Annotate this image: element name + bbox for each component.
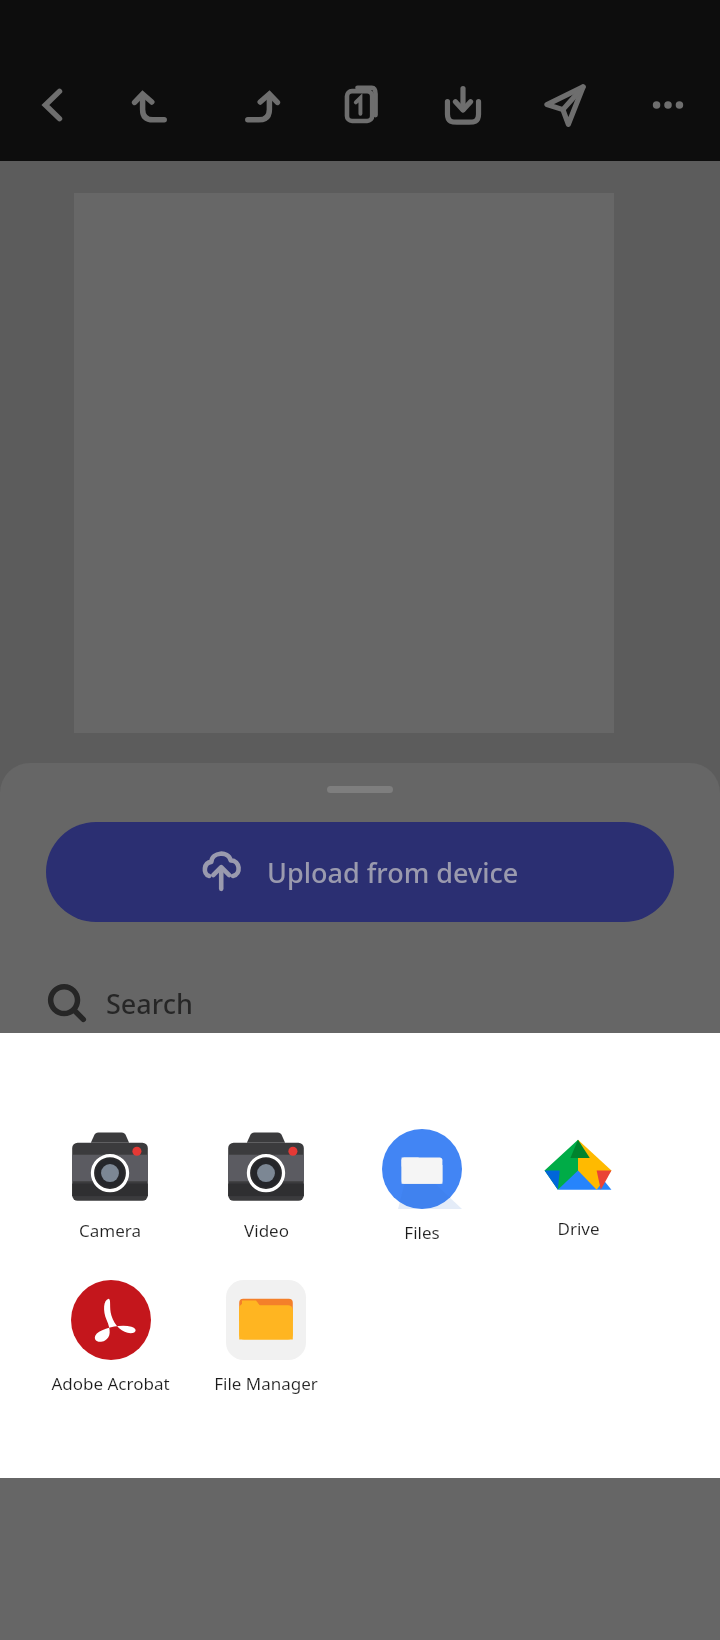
button[interactable]: Upload from device	[46, 822, 674, 922]
button[interactable]: Search	[42, 971, 720, 1035]
staticText: Drive	[557, 1217, 600, 1240]
button[interactable]: File Manager	[188, 1280, 344, 1395]
staticText: Search	[106, 985, 193, 1022]
button[interactable]: Redo	[229, 77, 285, 133]
staticText: Camera	[79, 1219, 141, 1242]
staticText: Upload from device	[267, 854, 519, 891]
button[interactable]: Camera	[32, 1129, 188, 1242]
button[interactable]: Undo	[127, 77, 183, 133]
button[interactable]: Send	[537, 77, 593, 133]
staticText: Files	[404, 1221, 440, 1244]
staticText: Video	[244, 1219, 289, 1242]
button[interactable]: Download	[435, 77, 491, 133]
button[interactable]: Adobe Acrobat	[32, 1280, 188, 1395]
button[interactable]: Drive	[500, 1129, 656, 1240]
button[interactable]: More options	[640, 77, 696, 133]
staticText: Adobe Acrobat	[51, 1372, 170, 1395]
button[interactable]: Pages	[332, 77, 388, 133]
staticText: File Manager	[214, 1372, 318, 1395]
button[interactable]: Video	[188, 1129, 344, 1242]
button[interactable]: Files	[344, 1129, 500, 1244]
button[interactable]: Back	[24, 77, 80, 133]
